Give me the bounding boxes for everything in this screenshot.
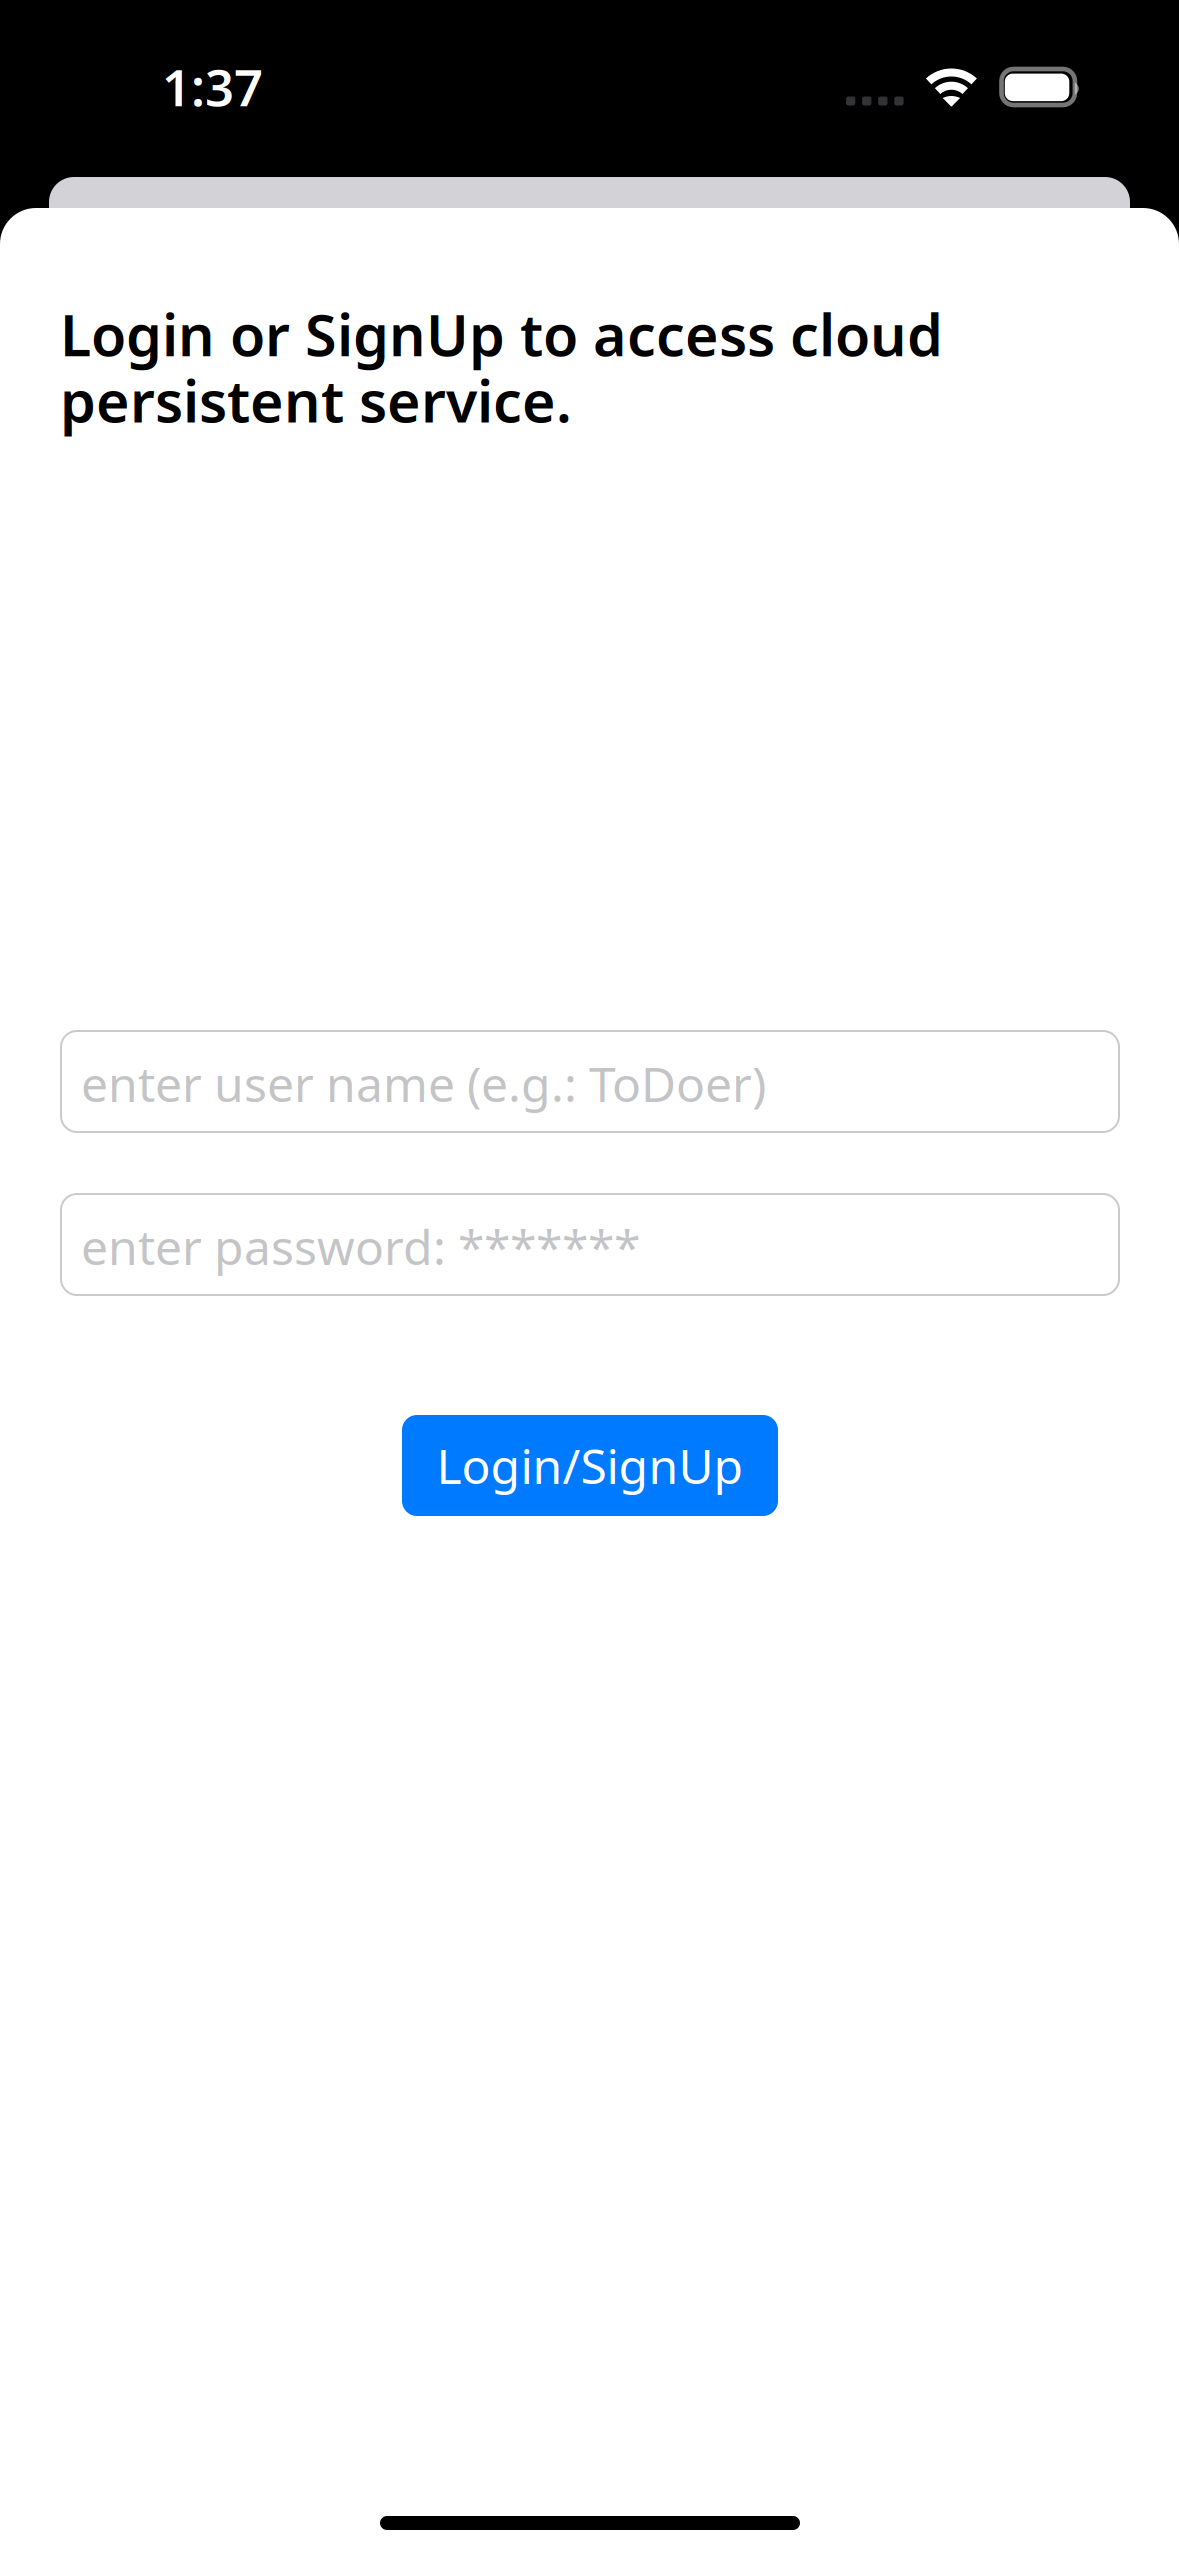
staticText: Login or SignUp to access cloud persiste… bbox=[60, 296, 943, 438]
button[interactable]: enter user name (e.g.: ToDoer) bbox=[61, 1031, 1119, 1132]
button[interactable]: enter password: ******* bbox=[61, 1194, 1119, 1295]
button[interactable]: Login/SignUp bbox=[402, 1415, 778, 1516]
staticText: enter user name (e.g.: ToDoer) bbox=[81, 1052, 766, 1115]
staticText: 1:37 bbox=[162, 53, 263, 120]
staticText: enter password: ******* bbox=[81, 1215, 640, 1278]
staticText: Login/SignUp bbox=[436, 1434, 743, 1497]
